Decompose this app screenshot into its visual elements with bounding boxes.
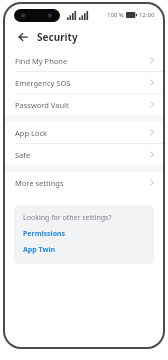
button[interactable]: App Twin	[23, 245, 56, 255]
staticText: Password Vault	[15, 100, 69, 110]
staticText: More settings	[15, 178, 64, 188]
staticText: 100 %	[107, 11, 124, 19]
staticText: Find My Phone	[15, 56, 68, 66]
staticText: Permissions	[23, 229, 66, 239]
button[interactable]: More settings	[5, 172, 163, 193]
staticText: App Twin	[23, 245, 56, 255]
staticText: App Lock	[15, 128, 48, 138]
button[interactable]: Back	[15, 29, 31, 45]
staticText: Safe	[15, 150, 31, 160]
staticText: 12:00	[139, 11, 155, 19]
staticText: Looking for other settings?	[23, 213, 112, 223]
button[interactable]: Permissions	[23, 229, 66, 239]
staticText: Emergency SOS	[15, 78, 71, 88]
button[interactable]: Emergency SOS	[5, 72, 163, 93]
button[interactable]: App Lock	[5, 122, 163, 143]
button[interactable]: Find My Phone	[5, 50, 163, 71]
staticText: Security	[37, 30, 78, 44]
button[interactable]: Safe	[5, 144, 163, 165]
button[interactable]: Password Vault	[5, 94, 163, 115]
